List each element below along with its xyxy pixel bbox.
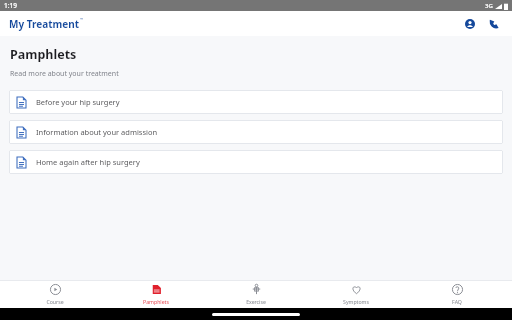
staticText: Symptoms: [343, 298, 369, 305]
staticText: Pamphlets: [143, 298, 169, 305]
staticText: 3G: [485, 2, 493, 10]
staticText: FAQ: [452, 298, 462, 305]
staticText: Information about your admission: [36, 127, 158, 137]
button[interactable]: Information about your admission: [9, 120, 503, 144]
button[interactable]: Pamphlets: [111, 281, 201, 308]
staticText: Home again after hip surgery: [36, 157, 140, 167]
button[interactable]: Before your hip surgery: [9, 90, 503, 114]
staticText: ™: [80, 17, 84, 22]
staticText: Before your hip surgery: [36, 97, 120, 107]
staticText: 1:19: [4, 1, 17, 10]
staticText: Course: [46, 298, 64, 305]
staticText: My Treatment: [9, 17, 80, 31]
staticText: Pamphlets: [10, 46, 77, 63]
staticText: Read more about your treatment: [10, 69, 119, 79]
button[interactable]: Call: [484, 14, 504, 34]
button[interactable]: FAQ: [412, 281, 502, 308]
button[interactable]: Symptoms: [311, 281, 401, 308]
button[interactable]: Account: [460, 14, 480, 34]
button[interactable]: Exercise: [211, 281, 301, 308]
button[interactable]: Course: [10, 281, 100, 308]
staticText: Exercise: [246, 298, 266, 305]
button[interactable]: Home again after hip surgery: [9, 150, 503, 174]
